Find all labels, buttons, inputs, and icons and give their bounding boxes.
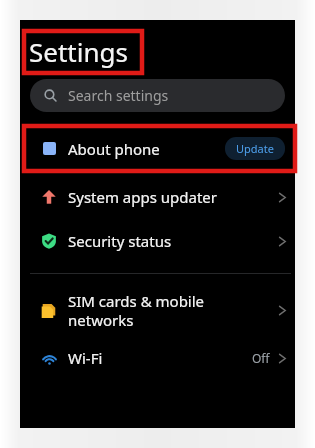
staticText: Update (236, 141, 274, 156)
button[interactable]: SIM cards & mobile networks (20, 284, 295, 336)
other: Open (278, 351, 287, 366)
other: Open (278, 190, 287, 205)
staticText: About phone (68, 139, 225, 159)
staticText: Off (252, 350, 270, 366)
button[interactable]: System apps updater (20, 175, 295, 219)
other: Open (278, 303, 287, 318)
button[interactable]: Security status (20, 219, 295, 263)
button[interactable]: Search settings (30, 79, 285, 112)
staticText: System apps updater (68, 187, 278, 207)
button[interactable]: Update (225, 137, 285, 160)
other: Open (278, 234, 287, 249)
button[interactable]: Wi-Fi (20, 336, 295, 380)
staticText: Settings (29, 34, 128, 69)
button[interactable]: About phone (24, 126, 295, 171)
staticText: Search settings (68, 86, 169, 105)
staticText: SIM cards & mobile networks (68, 291, 278, 330)
staticText: Wi-Fi (68, 348, 252, 368)
staticText: Security status (68, 231, 278, 251)
